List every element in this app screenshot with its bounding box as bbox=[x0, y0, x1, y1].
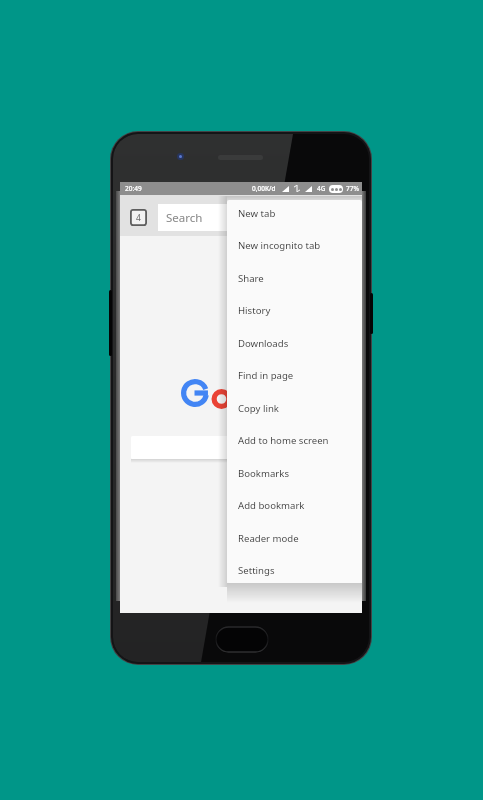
staticText: Add bookmark bbox=[238, 499, 305, 512]
button[interactable]: Add bookmark bbox=[227, 489, 362, 522]
button[interactable]: Copy link bbox=[227, 392, 362, 425]
button[interactable]: History bbox=[227, 294, 362, 327]
button[interactable]: Reader mode bbox=[227, 522, 362, 555]
button[interactable]: Find in page bbox=[227, 359, 362, 392]
staticText: New incognito tab bbox=[238, 239, 321, 252]
staticText: Bookmarks bbox=[238, 467, 290, 480]
button[interactable]: Search bbox=[158, 204, 323, 231]
staticText: New tab bbox=[238, 207, 276, 220]
staticText: Add to home screen bbox=[238, 434, 329, 447]
staticText: 4G bbox=[317, 184, 326, 193]
button[interactable]: Downloads bbox=[227, 327, 362, 360]
button[interactable]: Bookmarks bbox=[227, 457, 362, 490]
staticText: 20:49 bbox=[125, 184, 142, 193]
staticText: 77% bbox=[346, 184, 359, 193]
button[interactable]: Add to home screen bbox=[227, 424, 362, 457]
staticText: History bbox=[238, 304, 271, 317]
button[interactable]: New tab bbox=[227, 200, 362, 230]
button[interactable]: Settings bbox=[227, 554, 362, 583]
staticText: Find in page bbox=[238, 369, 294, 382]
staticText: Reader mode bbox=[238, 532, 299, 545]
staticText: Downloads bbox=[238, 337, 289, 350]
button[interactable]: Tabs bbox=[130, 209, 147, 226]
staticText: 0,00K/d bbox=[252, 184, 276, 193]
staticText: Search bbox=[166, 210, 203, 226]
staticText: Settings bbox=[238, 564, 275, 577]
staticText: Copy link bbox=[238, 402, 279, 415]
button[interactable]: New incognito tab bbox=[227, 229, 362, 262]
button[interactable]: Share bbox=[227, 262, 362, 295]
button[interactable] bbox=[131, 436, 344, 459]
staticText: 4 bbox=[136, 212, 141, 224]
staticText: Share bbox=[238, 272, 264, 285]
